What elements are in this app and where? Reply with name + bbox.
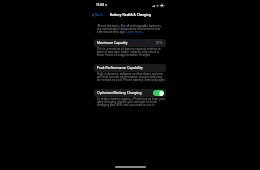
- staticText: To reduce battery ageing, iPhone learns …: [97, 97, 166, 107]
- button[interactable]: Back: [87, 11, 106, 18]
- staticText: 87%: [156, 40, 163, 45]
- staticText: iPhone batteries, like all rechargeable …: [97, 24, 166, 34]
- staticText: Peak Performance Capability: [97, 65, 143, 70]
- staticText: Built-in dynamic software and hardware s…: [97, 72, 166, 82]
- staticText: 11:53: [96, 3, 104, 7]
- staticText: Back: [95, 12, 103, 17]
- button[interactable]: Optimized Battery Charging toggle: [153, 90, 164, 96]
- staticText: Battery Health & Charging: [110, 13, 151, 17]
- button[interactable]: Maximum Capacity: [94, 39, 166, 47]
- button[interactable]: Peak Performance Capability: [94, 64, 166, 72]
- staticText: Maximum Capacity: [97, 40, 128, 45]
- staticText: Optimized Battery Charging: [97, 90, 142, 95]
- button[interactable]: Optimized Battery Charging: [94, 89, 166, 97]
- staticText: This is a measure of battery capacity re…: [97, 47, 166, 57]
